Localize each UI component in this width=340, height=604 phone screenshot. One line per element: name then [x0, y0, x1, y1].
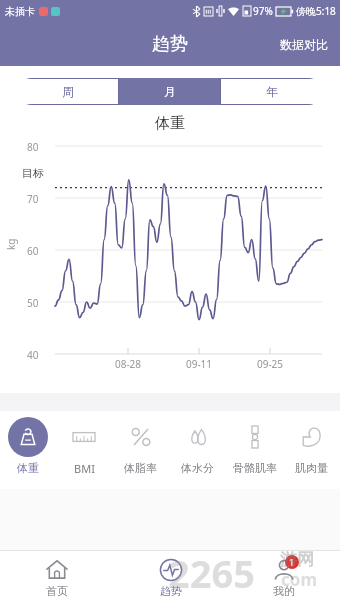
staticText: 体重	[0, 114, 340, 133]
staticText: 60	[27, 244, 39, 258]
staticText: 游网	[280, 549, 314, 570]
staticText: 50	[27, 296, 39, 310]
button[interactable]: 1	[227, 551, 340, 604]
button[interactable]: 体重	[0, 417, 56, 489]
button[interactable]: 数据对比	[268, 27, 340, 62]
staticText: 肌肉量	[295, 461, 328, 475]
staticText: 年	[266, 84, 278, 99]
button[interactable]: 年	[221, 78, 322, 105]
staticText: 70	[27, 192, 39, 206]
staticText: 目标	[22, 166, 44, 180]
button[interactable]: 肌肉量	[283, 417, 340, 489]
staticText: 傍晚5:18	[296, 4, 336, 18]
staticText: 08-28	[111, 357, 145, 371]
staticText: 体水分	[181, 461, 214, 475]
staticText: 骨骼肌率	[233, 461, 277, 475]
staticText: 数据对比	[280, 37, 328, 52]
staticText: 09-25	[253, 357, 287, 371]
staticText: com	[281, 568, 317, 591]
staticText: 09-11	[182, 357, 216, 371]
staticText: 体重	[17, 461, 39, 475]
staticText: 97%	[253, 4, 273, 18]
button[interactable]: 骨骼肌率	[226, 417, 283, 489]
staticText: 周	[62, 84, 74, 99]
staticText: 40	[27, 348, 39, 362]
staticText: 未插卡	[5, 5, 35, 18]
staticText: kg	[4, 238, 18, 250]
staticText: 1	[289, 556, 295, 568]
button[interactable]: 周	[18, 78, 118, 105]
button[interactable]: BMI	[56, 417, 112, 489]
button[interactable]: 月	[119, 78, 220, 105]
staticText: 月	[164, 84, 176, 99]
staticText: BMI	[74, 461, 95, 476]
staticText: 体脂率	[124, 461, 157, 475]
staticText: 首页	[46, 584, 68, 598]
button[interactable]: 体水分	[169, 417, 226, 489]
staticText: 我的	[273, 584, 295, 598]
staticText: 80	[27, 140, 39, 154]
staticText: 2265	[168, 547, 255, 599]
button[interactable]: 趋势	[114, 551, 227, 604]
button[interactable]: 首页	[0, 551, 114, 604]
staticText: 趋势	[160, 584, 182, 598]
button[interactable]: 体脂率	[112, 417, 169, 489]
staticText: 趋势	[152, 33, 188, 56]
